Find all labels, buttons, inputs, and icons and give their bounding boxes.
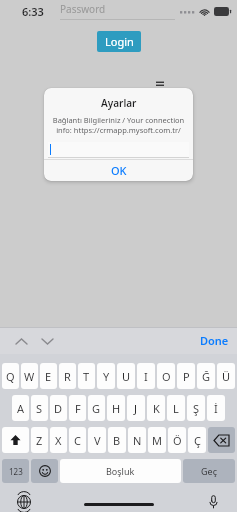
staticText: Ç — [194, 433, 201, 448]
button[interactable]: C — [69, 427, 86, 453]
staticText: D — [54, 401, 63, 416]
button[interactable]: O — [157, 363, 175, 389]
staticText: 123 — [9, 466, 23, 477]
staticText: G — [92, 401, 101, 416]
staticText: B — [113, 433, 121, 448]
staticText: Ş — [193, 401, 200, 416]
button[interactable]: Ü — [217, 363, 235, 389]
staticText: W — [24, 369, 35, 384]
staticText: Y — [103, 369, 110, 384]
staticText: S — [36, 401, 43, 416]
button[interactable]: Ö — [168, 427, 186, 453]
staticText: H — [112, 401, 121, 416]
staticText: 6:33 — [22, 4, 44, 19]
staticText: İ — [214, 401, 218, 416]
staticText: X — [55, 433, 62, 448]
button[interactable]: İ — [207, 395, 225, 421]
button[interactable]: A — [12, 395, 29, 421]
button[interactable]: U — [117, 363, 135, 389]
staticText: U — [122, 369, 131, 384]
button[interactable]: Login — [97, 31, 141, 52]
button[interactable]: W — [21, 363, 38, 389]
button[interactable]: V — [88, 427, 106, 453]
staticText: Password — [60, 2, 106, 16]
staticText: K — [153, 401, 160, 416]
button[interactable]: Ç — [188, 427, 206, 453]
button[interactable]: Emoji — [31, 459, 58, 483]
staticText: J — [134, 401, 138, 416]
staticText: Done — [200, 333, 229, 348]
staticText: P — [183, 369, 190, 384]
button[interactable]: Geç — [183, 459, 235, 483]
button[interactable]: Q — [2, 363, 19, 389]
button[interactable]: Z — [31, 427, 48, 453]
staticText: Z — [36, 433, 43, 448]
staticText: Bağlantı Bilgileriniz / Your connection … — [51, 115, 186, 135]
button[interactable]: K — [147, 395, 165, 421]
button[interactable]: Change keyboard — [14, 492, 34, 512]
button[interactable]: Previous field — [10, 330, 32, 352]
staticText: A — [17, 401, 25, 416]
button[interactable]: J — [127, 395, 145, 421]
staticText: O — [162, 369, 171, 384]
button[interactable]: OK — [44, 160, 193, 181]
staticText: R — [64, 369, 71, 384]
button[interactable]: P — [177, 363, 195, 389]
button[interactable]: Y — [97, 363, 115, 389]
staticText: OK — [111, 163, 127, 178]
staticText: V — [94, 433, 101, 448]
button[interactable]: X — [50, 427, 67, 453]
button[interactable]: Done — [200, 333, 229, 348]
staticText: L — [173, 401, 179, 416]
staticText: M — [152, 433, 162, 448]
staticText: Ü — [222, 369, 231, 384]
button[interactable]: N — [128, 427, 146, 453]
button[interactable]: Ğ — [197, 363, 215, 389]
staticText: N — [133, 433, 142, 448]
staticText: Ayarlar — [101, 96, 137, 110]
button[interactable]: S — [31, 395, 48, 421]
staticText: Login — [105, 34, 134, 49]
button[interactable]: 123 — [2, 459, 29, 483]
button[interactable]: G — [88, 395, 105, 421]
button[interactable]: Backspace — [208, 427, 235, 453]
staticText: Ö — [173, 433, 182, 448]
staticText: T — [83, 369, 90, 384]
staticText: Boşluk — [106, 465, 135, 477]
button[interactable]: M — [148, 427, 166, 453]
staticText: Geç — [201, 465, 217, 477]
button[interactable]: I — [137, 363, 155, 389]
button[interactable]: T — [78, 363, 95, 389]
button[interactable]: Shift — [2, 427, 29, 453]
staticText: E — [45, 369, 52, 384]
button[interactable]: Boşluk — [60, 459, 181, 483]
button[interactable]: Next field — [36, 330, 58, 352]
button[interactable]: D — [50, 395, 67, 421]
button[interactable]: Dictation — [203, 492, 223, 512]
button[interactable]: L — [167, 395, 185, 421]
staticText: Q — [6, 369, 15, 384]
staticText: Ğ — [202, 369, 211, 384]
button[interactable]: Ş — [187, 395, 205, 421]
button[interactable]: R — [59, 363, 76, 389]
button[interactable]: E — [40, 363, 57, 389]
staticText: F — [75, 401, 81, 416]
staticText: C — [74, 433, 81, 448]
staticText: I — [144, 369, 148, 384]
button[interactable]: F — [69, 395, 86, 421]
button[interactable]: B — [108, 427, 126, 453]
button[interactable]: H — [107, 395, 125, 421]
